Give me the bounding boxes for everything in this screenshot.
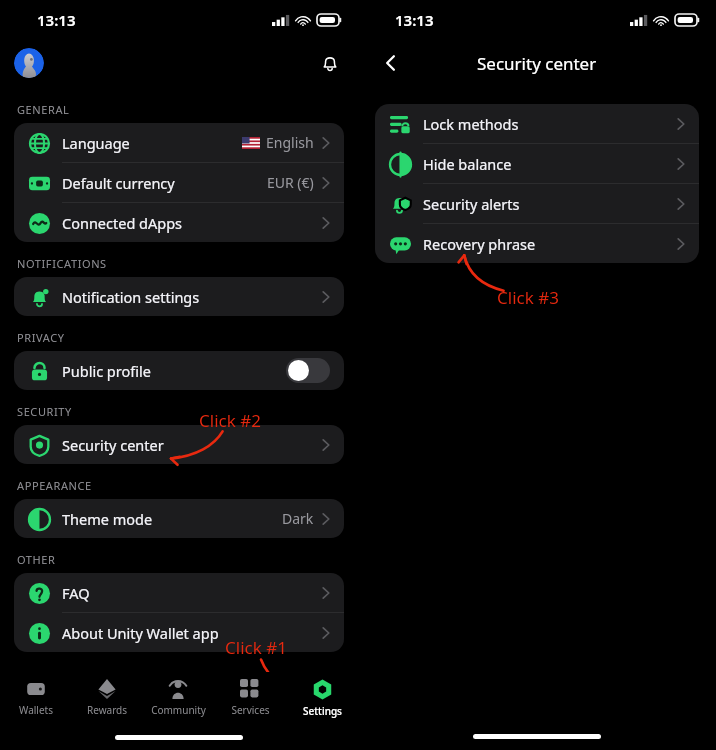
staticText: Click #1 [225,636,287,659]
staticText: Click #2 [199,409,261,432]
button[interactable]: About Unity Wallet app [14,613,344,652]
staticText: 13:13 [395,10,434,30]
staticText: About Unity Wallet app [62,623,219,643]
button[interactable]: Community [142,672,214,724]
button[interactable]: Recovery phrase [375,224,699,263]
button[interactable]: Connected dApps [14,203,344,242]
staticText: Wallets [19,703,53,717]
staticText: Public profile [62,361,151,381]
staticText: Notification settings [62,287,200,307]
staticText: Theme mode [62,509,153,529]
staticText: Security alerts [423,194,520,214]
staticText: EUR (€) [267,173,314,192]
button[interactable]: Hide balance [375,144,699,183]
staticText: Language [62,133,130,153]
button[interactable]: Notifications [316,49,344,77]
staticText: GENERAL [17,102,70,117]
button[interactable]: Profile [14,48,44,78]
staticText: 13:13 [37,10,76,30]
staticText: SECURITY [17,404,72,419]
button[interactable]: Back [376,48,406,78]
button[interactable]: Services [214,672,286,724]
staticText: Connected dApps [62,213,183,233]
staticText: PRIVACY [17,330,65,345]
staticText: FAQ [62,583,90,603]
staticText: Settings [303,704,342,718]
staticText: Security center [477,52,597,75]
button[interactable]: Security center [14,425,344,464]
button[interactable]: Lock methods [375,104,699,143]
staticText: NOTIFICATIONS [17,256,107,271]
button[interactable]: Settings [286,672,358,724]
staticText: Hide balance [423,154,512,174]
staticText: Recovery phrase [423,234,536,254]
button[interactable]: Theme mode [14,499,344,538]
button[interactable]: Security alerts [375,184,699,223]
button[interactable]: Default currency [14,163,344,202]
staticText: OTHER [17,552,56,567]
staticText: Default currency [62,173,175,193]
staticText: Rewards [87,703,127,717]
staticText: Security center [62,435,164,455]
staticText: Community [151,703,206,717]
button[interactable]: Rewards [71,672,142,724]
staticText: Services [231,703,270,717]
button[interactable]: Wallets [0,672,71,724]
staticText: APPEARANCE [17,478,92,493]
button[interactable]: FAQ [14,573,344,612]
staticText: Click #3 [497,286,559,309]
staticText: Dark [282,509,314,528]
button[interactable]: Language [14,123,344,162]
staticText: English [266,133,314,152]
button[interactable]: Notification settings [14,277,344,316]
staticText: Lock methods [423,114,519,134]
button[interactable]: Public profile [14,351,344,390]
